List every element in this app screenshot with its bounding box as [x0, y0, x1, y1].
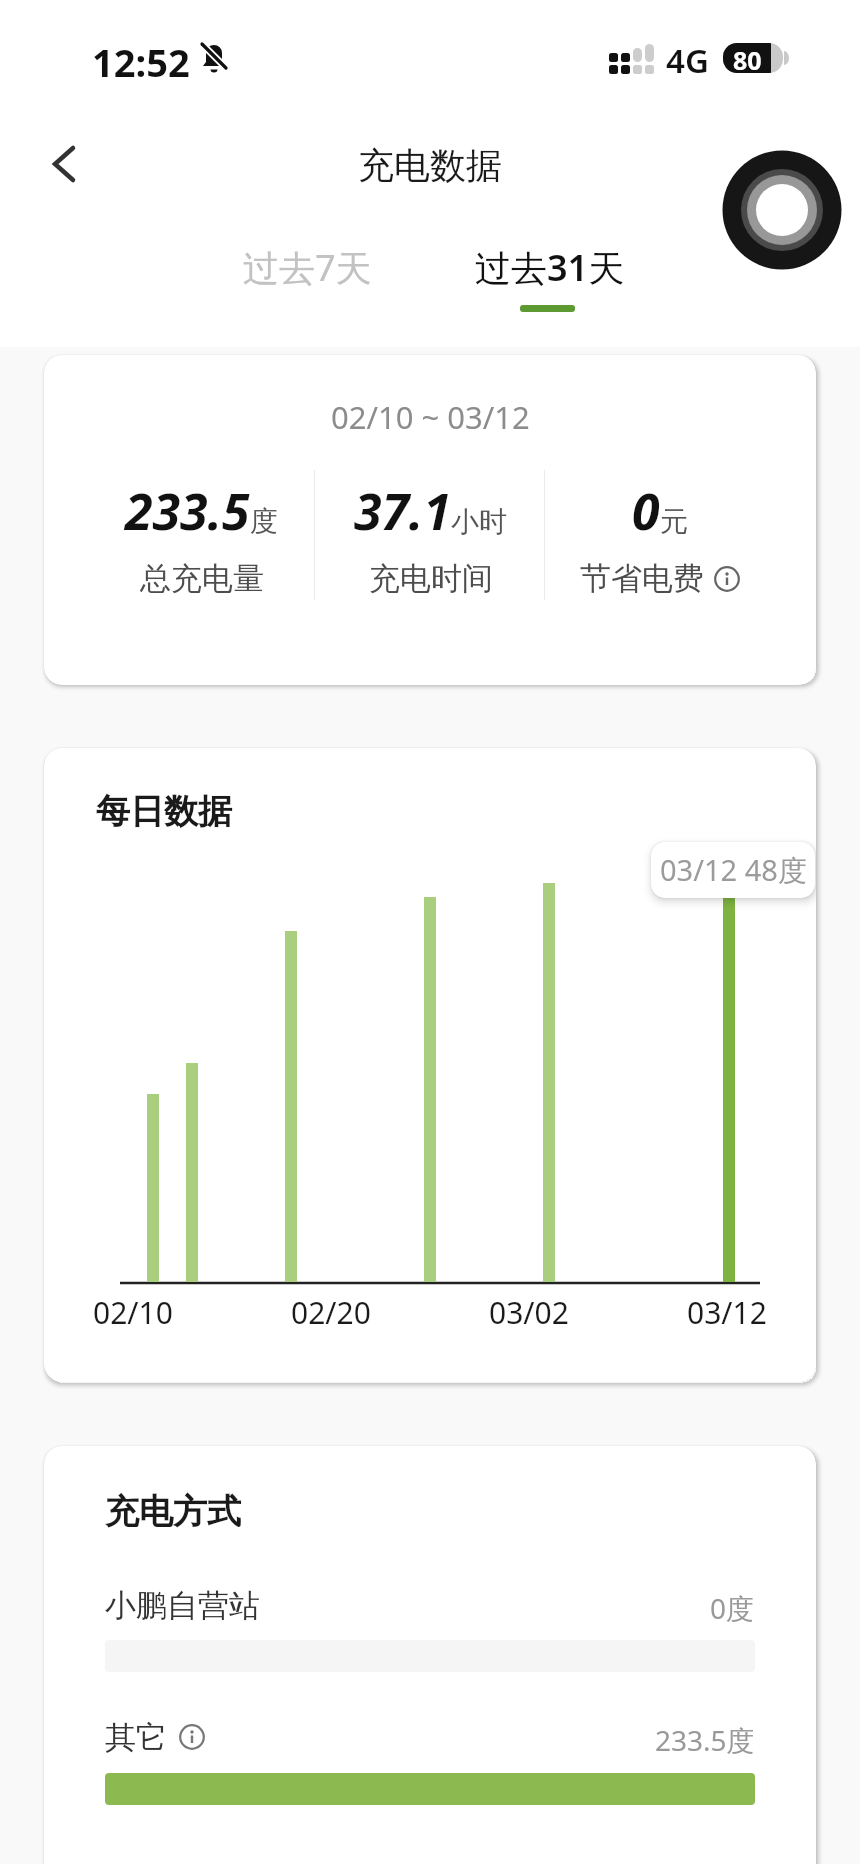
staticText: 总充电量	[140, 559, 264, 598]
staticText: 过去31天	[475, 243, 625, 292]
staticText: 233.5	[125, 477, 250, 545]
staticText: 03/02	[489, 1292, 569, 1333]
staticText: 其它	[105, 1718, 167, 1757]
staticText: 12:52	[92, 36, 190, 82]
staticText: 0度	[710, 1589, 755, 1627]
staticText: 03/12 48度	[660, 850, 807, 890]
button[interactable]: 过去31天	[450, 238, 650, 296]
button[interactable]	[714, 566, 740, 592]
staticText: 37.1	[354, 477, 451, 545]
staticText: 4G	[666, 38, 709, 80]
staticText: 小时	[451, 504, 507, 539]
staticText: 0	[632, 477, 660, 545]
staticText: 过去7天	[243, 243, 372, 292]
button[interactable]	[34, 134, 94, 194]
button[interactable]	[105, 1773, 755, 1805]
staticText: 节省电费	[580, 559, 704, 598]
button[interactable]: 过去7天	[217, 238, 397, 296]
staticText: 充电时间	[369, 559, 493, 598]
staticText: 02/10	[93, 1292, 173, 1333]
button[interactable]	[179, 1724, 205, 1750]
staticText: 充电方式	[105, 1490, 241, 1533]
staticText: 03/12	[687, 1292, 767, 1333]
staticText: 80	[733, 43, 762, 73]
staticText: 元	[660, 504, 688, 539]
staticText: 充电数据	[358, 143, 502, 188]
staticText: 每日数据	[96, 790, 232, 833]
staticText: 度	[250, 504, 278, 539]
staticText: 02/20	[291, 1292, 371, 1333]
staticText: 02/10 ~ 03/12	[331, 396, 530, 438]
staticText: 小鹏自营站	[105, 1586, 260, 1625]
staticText: 233.5度	[655, 1721, 755, 1759]
